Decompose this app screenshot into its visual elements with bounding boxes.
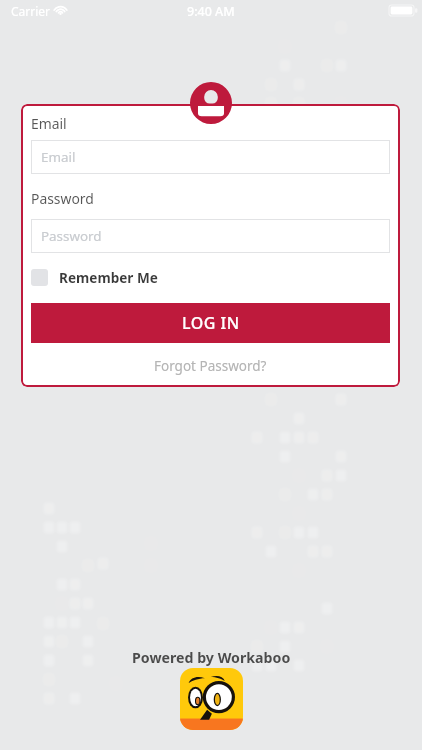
button[interactable]: Workaboo logo <box>180 668 243 730</box>
staticText: Powered by Workaboo <box>132 648 291 667</box>
staticText: 9:40 AM <box>187 3 235 20</box>
staticText: Carrier <box>11 3 51 19</box>
staticText: Email <box>31 114 67 133</box>
button[interactable]: Password <box>31 219 390 253</box>
button[interactable]: Remember Me <box>31 268 158 286</box>
staticText: Password <box>41 227 102 245</box>
staticText: LOG IN <box>182 312 240 334</box>
button[interactable]: Forgot Password? <box>31 354 390 378</box>
button[interactable]: LOG IN <box>31 303 390 343</box>
staticText: Remember Me <box>59 268 158 286</box>
button[interactable]: Email <box>31 140 390 174</box>
staticText: Email <box>41 148 76 166</box>
staticText: Forgot Password? <box>154 357 267 375</box>
staticText: Password <box>31 189 94 208</box>
